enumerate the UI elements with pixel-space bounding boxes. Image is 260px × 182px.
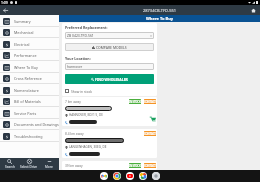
staticText: IN STOCK <box>129 100 141 104</box>
staticText: Preferred Replacement: <box>65 25 108 30</box>
button[interactable]: Home <box>251 8 256 13</box>
button[interactable]: CONTACT <box>144 99 156 104</box>
staticText: Select Drive <box>20 165 38 169</box>
button[interactable]: Bill of Materials <box>0 96 59 107</box>
button[interactable]: CONTACT <box>144 163 156 168</box>
staticText: 39 km away <box>65 164 83 168</box>
button[interactable]: COMPARE MODELS <box>65 43 154 51</box>
staticText: 28734CB-TFD-551 <box>143 8 177 13</box>
staticText: CONTACT <box>144 132 156 136</box>
button[interactable]: Assistant <box>152 172 160 180</box>
staticText: IN STOCK <box>129 164 141 168</box>
button[interactable]: Select Drive <box>19 158 39 170</box>
button[interactable]: Photos <box>139 172 147 180</box>
staticText: Where To Buy <box>14 65 38 70</box>
button[interactable]: CONTACT <box>144 131 156 136</box>
staticText: Show in stock <box>71 89 93 93</box>
staticText: 8.4 km away <box>65 132 84 136</box>
staticText: hannover <box>67 64 83 69</box>
staticText: CONTACT <box>144 164 156 168</box>
staticText: Mechanical <box>14 30 34 35</box>
button[interactable]: Nomenclature <box>0 85 59 96</box>
button[interactable]: Back <box>3 8 8 13</box>
button[interactable]: Summary <box>0 16 59 27</box>
staticText: ZB 0423-TFD-561 <box>67 33 94 38</box>
staticText: Performance <box>14 53 37 58</box>
button[interactable]: 39 km away <box>62 161 157 170</box>
button[interactable]: 8.4 km away <box>62 129 157 158</box>
button[interactable]: Cross Reference <box>0 73 59 84</box>
button[interactable]: ZB 0423-TFD-561 <box>65 32 154 39</box>
staticText: 1:09 <box>1 0 8 5</box>
button[interactable]: Electrical <box>0 39 59 50</box>
staticText: FIND WHOLESALER <box>95 77 128 82</box>
staticText: Where To Buy <box>146 16 174 21</box>
staticText: Search <box>5 165 15 169</box>
button[interactable]: IN STOCK <box>129 99 141 104</box>
staticText: More <box>45 165 53 169</box>
staticText: Electrical <box>14 42 30 47</box>
button[interactable]: Service Parts <box>0 108 59 119</box>
button[interactable]: 7 km away <box>62 97 157 126</box>
staticText: LANGENHAGEN, 30EG, DE <box>69 145 107 149</box>
staticText: Troubleshooting <box>14 134 43 139</box>
button[interactable]: Performance <box>0 50 59 61</box>
staticText: Service Parts <box>14 111 37 116</box>
button[interactable]: Chrome <box>113 172 121 180</box>
button[interactable]: Troubleshooting <box>0 131 59 142</box>
staticText: Nomenclature <box>14 88 39 93</box>
staticText: CONTACT <box>144 100 156 104</box>
button[interactable]: Gmail <box>100 172 108 180</box>
button[interactable]: Search <box>0 158 19 170</box>
button[interactable]: Documents and Drawings <box>0 119 59 130</box>
staticText: HANNOVER, BD/1 5, DE <box>69 113 103 117</box>
button[interactable]: YouTube <box>126 172 134 180</box>
staticText: 7 km away <box>65 100 81 104</box>
staticText: Bill of Materials <box>14 99 41 104</box>
button[interactable]: FIND WHOLESALER <box>65 74 154 84</box>
staticText: COMPARE MODELS <box>96 45 127 50</box>
button[interactable]: Show in stock <box>65 89 93 93</box>
button[interactable]: IN STOCK <box>129 163 141 168</box>
button[interactable]: More <box>39 158 59 170</box>
button[interactable]: Add to cart <box>150 116 156 122</box>
staticText: Summary <box>14 19 31 24</box>
button[interactable]: Mechanical <box>0 27 59 38</box>
staticText: Cross Reference <box>14 76 42 81</box>
button[interactable]: Where To Buy <box>0 62 59 73</box>
staticText: Documents and Drawings <box>14 122 59 127</box>
staticText: Your Location: <box>65 56 91 61</box>
button[interactable]: hannover <box>65 63 154 70</box>
